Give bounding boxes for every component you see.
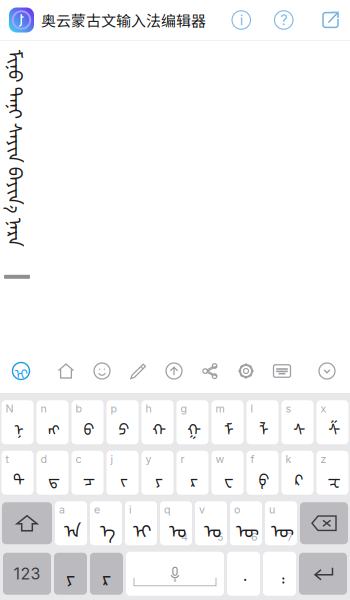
button[interactable]: k	[281, 451, 313, 495]
staticText: i	[240, 11, 243, 29]
button[interactable]: w	[211, 451, 243, 495]
staticText: w	[215, 453, 224, 466]
button[interactable]: Settings	[228, 351, 264, 391]
staticText: ᠬ	[152, 412, 166, 440]
button[interactable]: p	[106, 400, 138, 444]
staticText: ᠷ	[102, 557, 111, 590]
button[interactable]: ᠷ	[90, 553, 123, 595]
button[interactable]: v	[195, 501, 227, 545]
staticText: ᠥ	[236, 511, 259, 544]
button[interactable]: Emoji	[84, 351, 120, 391]
button[interactable]: r	[176, 451, 208, 495]
button[interactable]	[300, 502, 348, 544]
staticText: n	[40, 402, 46, 415]
button[interactable]: i	[125, 501, 157, 545]
button[interactable]: s	[281, 400, 313, 444]
staticText: ᠣ	[169, 511, 186, 544]
staticText: ᠢ	[133, 511, 152, 544]
staticText: ᠹ	[258, 463, 269, 491]
button[interactable]: ᠶ	[54, 553, 87, 595]
button[interactable]: Mongolian input	[3, 351, 39, 391]
staticText: x	[320, 402, 326, 415]
staticText: z	[320, 453, 326, 466]
staticText: ᠫ	[118, 412, 129, 440]
staticText: i	[129, 503, 132, 516]
button[interactable]: Space	[126, 552, 224, 596]
staticText: ᠺ	[294, 463, 303, 491]
staticText: g	[180, 402, 187, 415]
staticText: 7	[287, 530, 293, 543]
staticText: d	[40, 453, 47, 466]
staticText: l	[250, 402, 253, 415]
button[interactable]: Voice input	[156, 351, 192, 391]
button[interactable]: y	[141, 451, 173, 495]
staticText: ᠯ	[259, 412, 269, 440]
button[interactable]: h	[141, 400, 173, 444]
button[interactable]: q	[160, 501, 192, 545]
button[interactable]: Collapse keyboard	[309, 351, 345, 391]
button[interactable]: e	[90, 501, 122, 545]
staticText: ᠨ	[14, 412, 24, 440]
staticText: ᠡ	[100, 511, 115, 544]
button[interactable]: f	[246, 451, 278, 495]
button[interactable]: z	[316, 451, 348, 495]
button[interactable]: N	[1, 400, 33, 444]
staticText: ᠲ	[13, 463, 25, 491]
staticText: t	[5, 453, 8, 466]
button[interactable]: c	[71, 451, 103, 495]
staticText: ᠱ	[328, 412, 340, 440]
staticText: j	[110, 453, 113, 466]
button[interactable]: Handwriting	[120, 351, 156, 391]
button[interactable]: t	[1, 451, 33, 495]
button[interactable]: Home	[48, 351, 84, 391]
button[interactable]	[2, 502, 52, 544]
staticText: u	[269, 503, 275, 516]
button[interactable]: a	[55, 501, 87, 545]
staticText: s	[285, 402, 291, 415]
button[interactable]: Share	[192, 351, 228, 391]
button[interactable]: d	[36, 451, 68, 495]
button[interactable]: b	[71, 400, 103, 444]
button[interactable]	[299, 553, 347, 595]
button[interactable]: o	[230, 501, 262, 545]
button[interactable]: g	[176, 400, 208, 444]
staticText: ᠠ	[64, 511, 81, 544]
button[interactable]: Help	[270, 7, 297, 33]
staticText: ᠰ	[293, 412, 305, 440]
staticText: N	[5, 402, 13, 415]
button[interactable]: l	[246, 400, 278, 444]
staticText: q	[164, 503, 171, 516]
staticText: 5	[217, 530, 223, 543]
button[interactable]: m	[211, 400, 243, 444]
staticText: y	[145, 453, 151, 466]
staticText: r	[180, 453, 184, 466]
button[interactable]: Info	[228, 7, 254, 33]
staticText: ᠢ	[14, 359, 27, 383]
staticText: 奥云蒙古文输入法编辑器	[41, 9, 206, 31]
staticText: k	[285, 453, 291, 466]
staticText: v	[199, 503, 205, 516]
button[interactable]: Keyboard	[264, 351, 300, 391]
staticText: ᠤ	[204, 511, 221, 544]
button[interactable]	[263, 552, 296, 596]
staticText: ᠄	[278, 564, 284, 592]
button[interactable]	[227, 552, 260, 596]
staticText: ᠵ	[120, 463, 128, 491]
staticText: ᠭ	[187, 412, 201, 440]
staticText: ᠩ	[48, 412, 60, 440]
button[interactable]: n	[36, 400, 68, 444]
button[interactable]: Share	[317, 6, 344, 34]
staticText: ᠨᠡᠷᠡ	[4, 216, 33, 249]
staticText: ᠮ	[224, 412, 234, 440]
button[interactable]: j	[106, 451, 138, 495]
button[interactable]: u	[265, 501, 297, 545]
staticText: ᠶ	[155, 463, 163, 491]
button[interactable]: 123	[3, 553, 51, 595]
staticText: ᠸ	[224, 463, 234, 491]
staticText: m	[215, 402, 224, 415]
staticText: ᠦ	[271, 511, 294, 544]
staticText: ᠷ	[190, 463, 198, 491]
staticText: ᠪ	[83, 412, 94, 440]
button[interactable]: x	[316, 400, 348, 444]
staticText: e	[94, 503, 100, 516]
